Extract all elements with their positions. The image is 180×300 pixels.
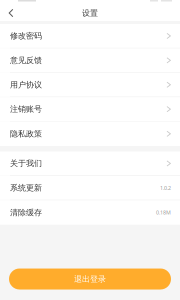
button[interactable]: 隐私政策 — [0, 122, 180, 146]
staticText: 系统更新 — [10, 183, 42, 193]
staticText: 用户协议 — [10, 80, 42, 90]
button[interactable]: 清除缓存 — [0, 200, 180, 225]
button[interactable]: 修改密码 — [0, 24, 180, 48]
staticText: 0.18M — [156, 209, 171, 216]
staticText: 关于我们 — [10, 158, 42, 168]
staticText: 清除缓存 — [10, 208, 42, 217]
staticText: 退出登录 — [74, 274, 106, 284]
button[interactable]: 关于我们 — [0, 151, 180, 176]
button[interactable]: 用户协议 — [0, 73, 180, 97]
button[interactable]: Back — [0, 0, 22, 23]
staticText: 意见反馈 — [10, 55, 42, 65]
staticText: 隐私政策 — [10, 129, 42, 139]
staticText: 修改密码 — [10, 31, 42, 41]
button[interactable]: 系统更新 — [0, 176, 180, 200]
staticText: 1.0.2 — [160, 184, 171, 191]
staticText: 注销账号 — [10, 104, 42, 114]
staticText: 设置 — [82, 8, 98, 18]
button[interactable]: 退出登录 — [9, 268, 171, 289]
button[interactable]: 意见反馈 — [0, 48, 180, 73]
button[interactable]: 注销账号 — [0, 97, 180, 122]
